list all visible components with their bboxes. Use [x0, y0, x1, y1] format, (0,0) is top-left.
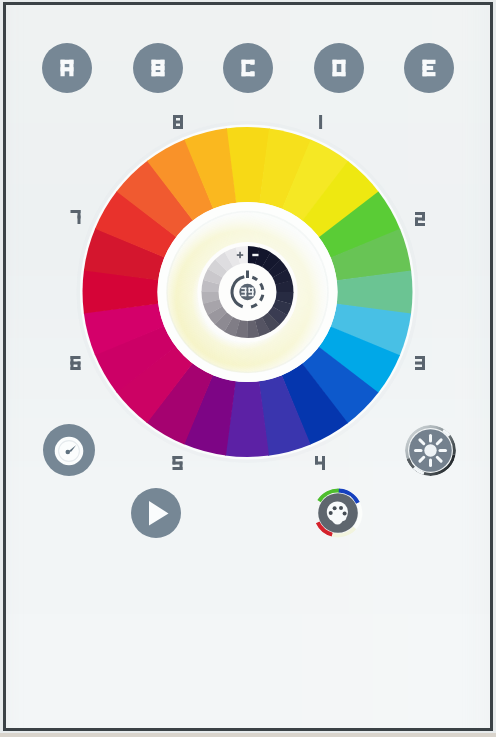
button[interactable]: Colour palette: [313, 488, 363, 538]
button[interactable]: Scene A: [42, 43, 92, 93]
button[interactable]: Brightness: [405, 425, 456, 476]
button[interactable]: Play: [131, 488, 181, 538]
button[interactable]: Scene B: [133, 43, 183, 93]
button[interactable]: Speed: [43, 424, 95, 476]
button[interactable]: Scene C: [223, 43, 273, 93]
button[interactable]: Scene E: [404, 43, 454, 93]
button[interactable]: Scene D: [314, 43, 364, 93]
